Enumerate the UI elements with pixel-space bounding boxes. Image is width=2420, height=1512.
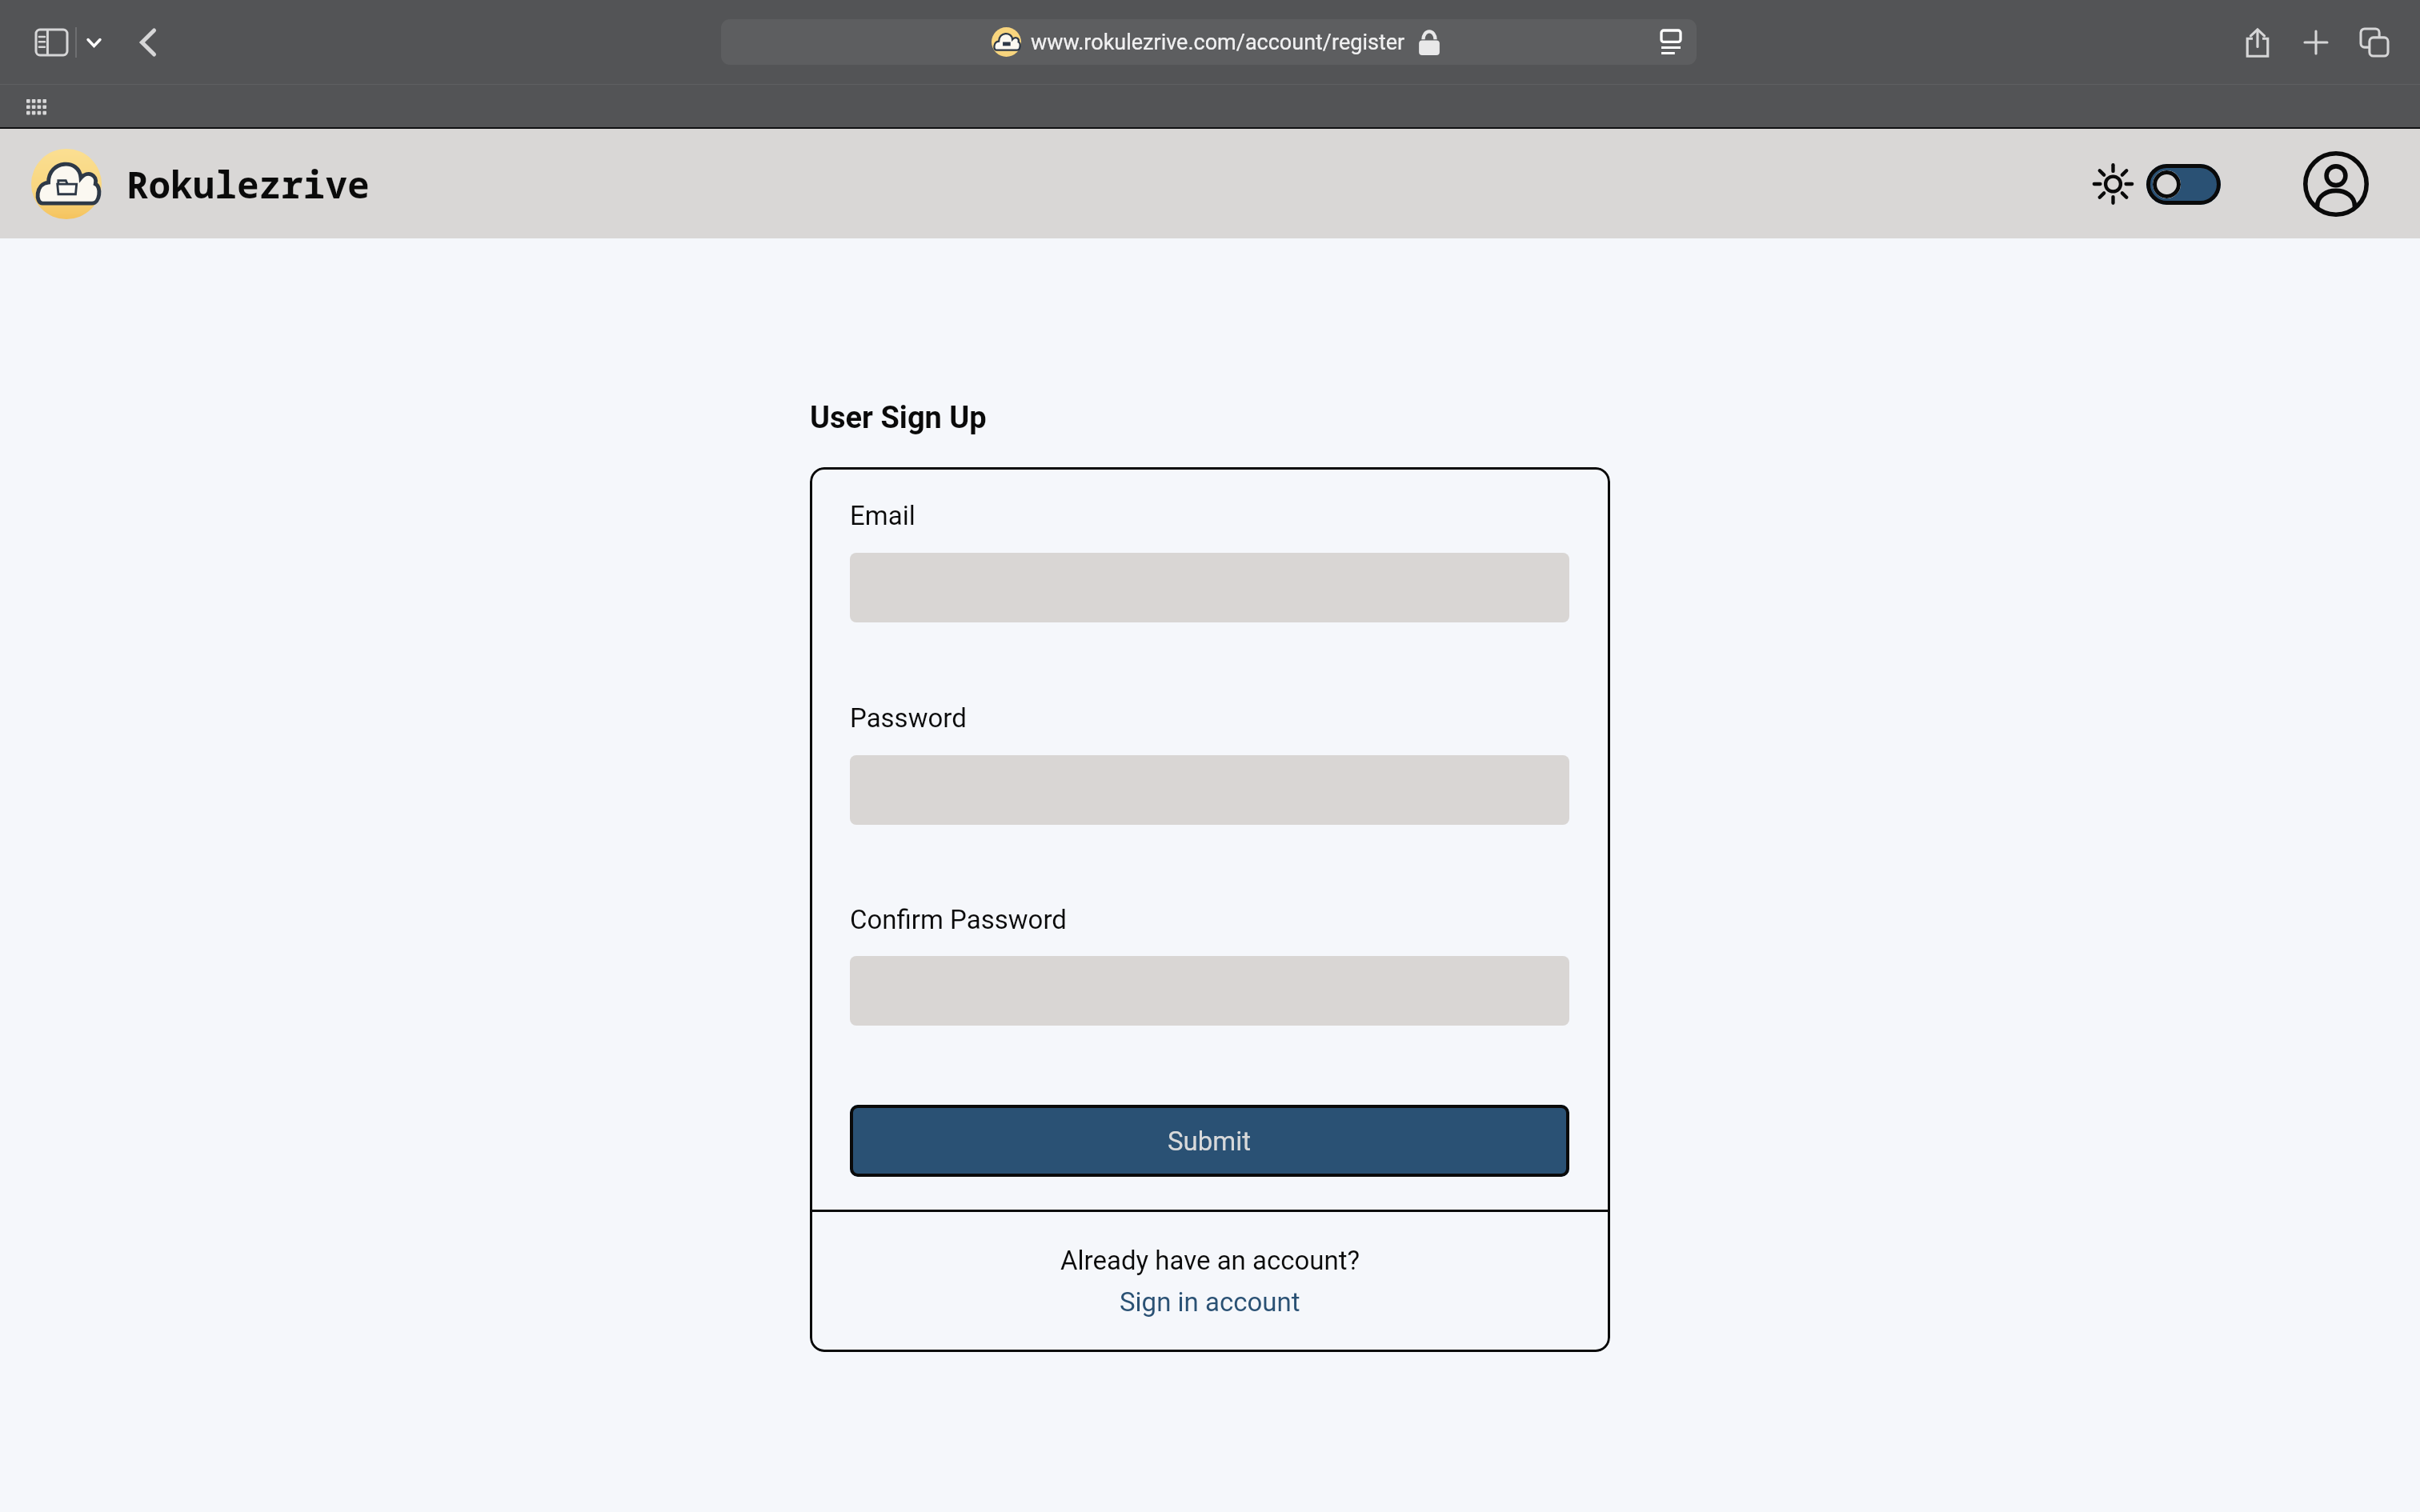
button[interactable]: Sidebar options xyxy=(78,27,109,58)
staticText: Sign in account xyxy=(1120,1286,1300,1318)
button[interactable]: Rokulezrive xyxy=(31,149,370,219)
button[interactable]: Toggle theme xyxy=(2093,162,2221,206)
button[interactable]: Back xyxy=(130,25,166,60)
staticText: Confirm Password xyxy=(850,904,1067,935)
button[interactable]: Text field xyxy=(850,755,1569,825)
button[interactable]: www.rokulezrive.com/account/register xyxy=(721,19,1697,65)
button[interactable]: Submit xyxy=(850,1105,1569,1177)
button[interactable]: Show tab overview xyxy=(2353,21,2396,64)
button[interactable]: New tab xyxy=(2294,21,2338,64)
staticText: User Sign Up xyxy=(810,400,987,436)
staticText: www.rokulezrive.com/account/register xyxy=(1031,30,1405,55)
staticText: Rokulezrive xyxy=(126,159,370,210)
staticText: Already have an account? xyxy=(1060,1245,1360,1276)
staticText: Submit xyxy=(1168,1126,1252,1157)
button[interactable]: Account xyxy=(2302,150,2370,218)
button[interactable]: Share xyxy=(2236,21,2279,64)
button[interactable]: Reader view xyxy=(1655,26,1687,58)
staticText: Password xyxy=(850,702,967,734)
staticText: Email xyxy=(850,500,916,531)
button[interactable]: Sidebar xyxy=(34,26,69,58)
button[interactable]: Sign in account xyxy=(1120,1286,1300,1318)
button[interactable]: Favourites grid xyxy=(20,90,52,122)
